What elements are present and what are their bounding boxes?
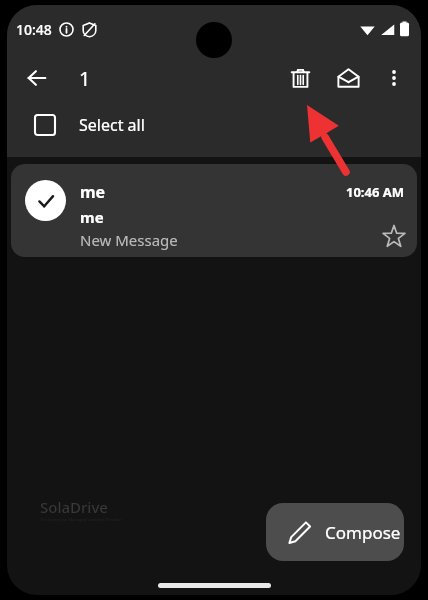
button[interactable]: Star (377, 220, 411, 254)
button[interactable]: Back (16, 57, 58, 99)
staticText: SolaDrive (40, 497, 108, 517)
button[interactable]: Select all (7, 103, 421, 147)
staticText: me (80, 207, 104, 227)
staticText: Select all (79, 114, 145, 136)
button[interactable]: More options (373, 57, 415, 99)
staticText: 10:48 (16, 20, 52, 39)
staticText: 1 (79, 65, 91, 92)
staticText: me (80, 181, 106, 203)
staticText: New Message (80, 230, 178, 250)
button[interactable]: Selected (11, 164, 417, 257)
button[interactable]: Delete (279, 57, 321, 99)
staticText: Compose (325, 521, 401, 544)
button[interactable]: Mark as read (327, 57, 369, 99)
other: Selected (25, 180, 66, 221)
staticText: 10:46 AM (346, 183, 405, 201)
button[interactable]: Compose (266, 503, 404, 561)
